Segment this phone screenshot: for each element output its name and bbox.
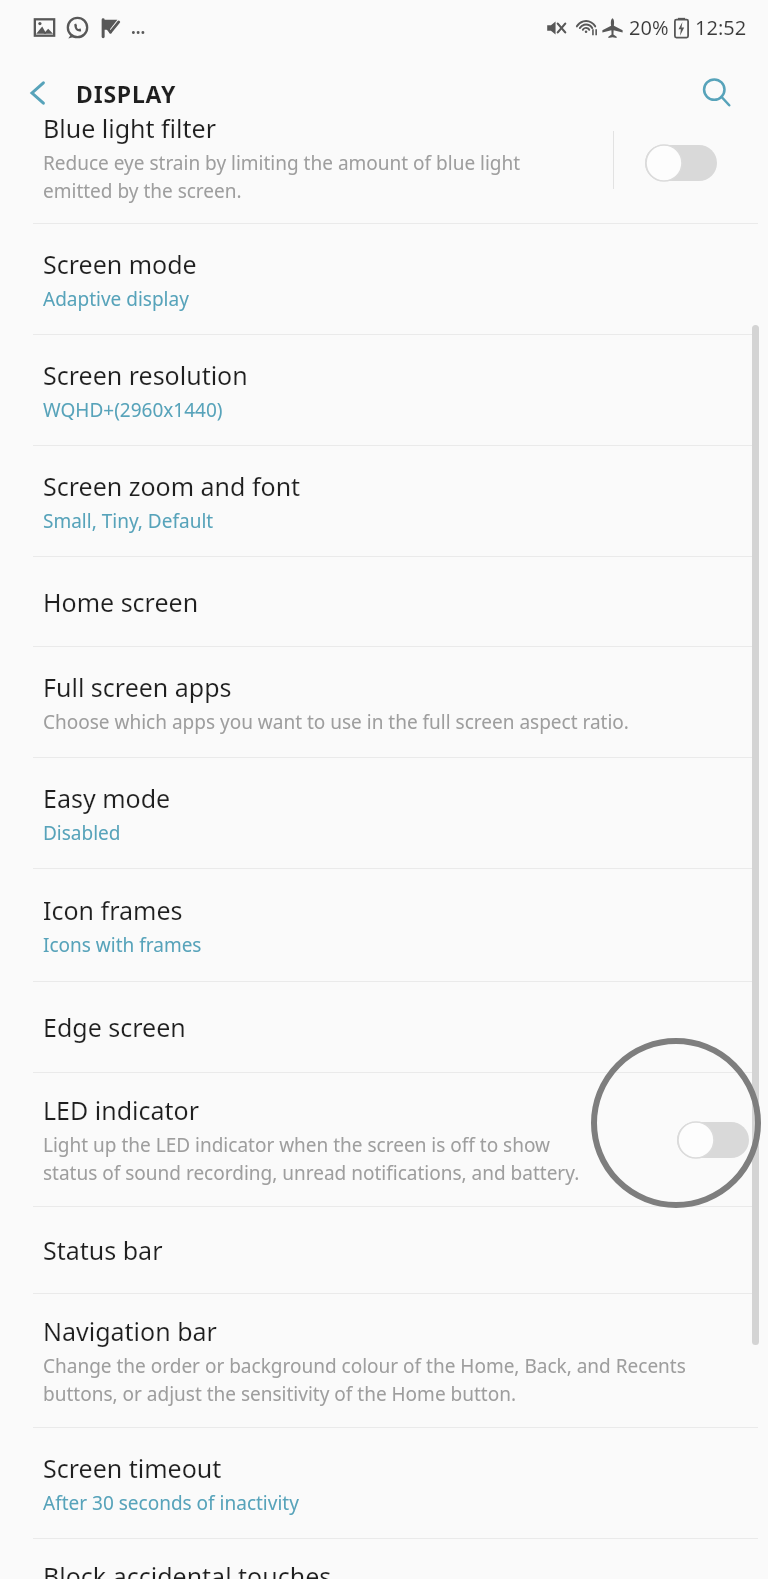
button[interactable]: Screen mode xyxy=(0,224,768,334)
staticText: Screen timeout xyxy=(43,1451,222,1485)
staticText: Icon frames xyxy=(43,893,183,927)
staticText: ... xyxy=(131,16,146,39)
staticText: Navigation bar xyxy=(43,1314,217,1348)
staticText: Screen resolution xyxy=(43,358,248,392)
staticText: Change the order or background colour of… xyxy=(43,1353,713,1407)
staticText: 12:52 xyxy=(695,14,747,41)
button[interactable]: Navigation bar xyxy=(0,1294,768,1427)
button[interactable]: Edge screen xyxy=(0,982,768,1072)
staticText: Icons with frames xyxy=(43,932,202,958)
staticText: Small, Tiny, Default xyxy=(43,508,214,534)
button[interactable]: Screen timeout xyxy=(0,1428,768,1538)
button[interactable]: Home screen xyxy=(0,557,768,646)
button[interactable]: Back xyxy=(0,55,76,131)
button[interactable]: Search xyxy=(686,62,748,124)
staticText: Light up the LED indicator when the scre… xyxy=(43,1132,593,1186)
staticText: WQHD+(2960x1440) xyxy=(43,397,223,423)
button[interactable]: Block accidental touches xyxy=(0,1539,768,1579)
button[interactable]: Blue light filter xyxy=(0,131,768,223)
button[interactable]: Toggle switch xyxy=(644,143,718,183)
button[interactable]: LED indicator xyxy=(0,1073,768,1206)
staticText: After 30 seconds of inactivity xyxy=(43,1490,299,1516)
staticText: Edge screen xyxy=(43,1010,186,1044)
button[interactable]: Easy mode xyxy=(0,758,768,868)
staticText: Status bar xyxy=(43,1233,163,1267)
button[interactable]: Toggle switch xyxy=(676,1120,750,1160)
button[interactable]: Full screen apps xyxy=(0,647,768,757)
staticText: Blue light filter xyxy=(43,111,216,145)
staticText: Screen mode xyxy=(43,247,197,281)
staticText: Screen zoom and font xyxy=(43,469,301,503)
staticText: LED indicator xyxy=(43,1093,199,1127)
button[interactable]: Screen resolution xyxy=(0,335,768,445)
staticText: Block accidental touches xyxy=(43,1559,332,1579)
staticText: Full screen apps xyxy=(43,670,232,704)
button[interactable]: Icon frames xyxy=(0,869,768,981)
button[interactable]: Screen zoom and font xyxy=(0,446,768,556)
staticText: Easy mode xyxy=(43,781,171,815)
staticText: Reduce eye strain by limiting the amount… xyxy=(43,150,563,203)
staticText: Home screen xyxy=(43,585,199,619)
button[interactable]: Status bar xyxy=(0,1207,768,1293)
staticText: DISPLAY xyxy=(76,78,177,109)
staticText: Disabled xyxy=(43,820,121,846)
staticText: 20% xyxy=(629,14,669,41)
staticText: Adaptive display xyxy=(43,286,189,312)
staticText: Choose which apps you want to use in the… xyxy=(43,709,629,735)
